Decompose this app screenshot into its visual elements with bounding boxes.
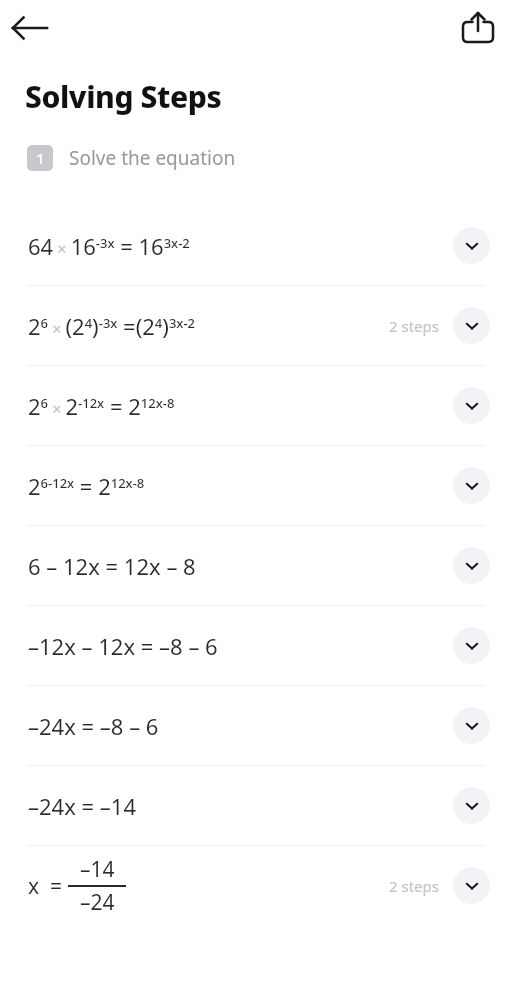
button[interactable]: –12x – 12x = –8 – 6 [0,606,508,685]
button[interactable]: 64 × 16-3x = 163x-2 [0,206,508,285]
staticText: 26-12x = 212x-8 [28,471,145,501]
staticText: –24x = –8 – 6 [28,711,159,741]
button[interactable]: Share [454,4,502,52]
staticText: 2 steps [389,316,439,336]
button[interactable]: Expand step [453,387,490,424]
staticText: 6 – 12x = 12x – 8 [28,551,196,581]
staticText: –12x – 12x = –8 – 6 [28,631,218,661]
staticText: 2 steps [389,876,439,896]
button[interactable]: Expand step [453,227,490,264]
staticText: –14 [80,855,115,884]
button[interactable]: 26 × (24)-3x =(24)3x-2 [0,286,508,365]
button[interactable]: Expand step [453,307,490,344]
staticText: 26 × 2-12x = 212x-8 [28,391,175,421]
staticText: x = [28,872,68,901]
staticText: Solving Steps [25,76,222,117]
button[interactable]: Expand step [453,627,490,664]
staticText: 1 [36,148,45,168]
button[interactable]: Expand step [453,467,490,504]
button[interactable]: Expand step [453,867,490,904]
button[interactable]: x = [0,846,508,925]
button[interactable]: Back [6,4,54,52]
staticText: –24x = –14 [28,791,136,821]
staticText: Solve the equation [69,145,236,171]
button[interactable]: –24x = –14 [0,766,508,845]
button[interactable]: 26 × 2-12x = 212x-8 [0,366,508,445]
staticText: 64 × 16-3x = 163x-2 [28,231,190,261]
button[interactable]: Expand step [453,707,490,744]
button[interactable]: Expand step [453,547,490,584]
button[interactable]: –24x = –8 – 6 [0,686,508,765]
staticText: –24 [80,888,115,917]
staticText: 26 × (24)-3x =(24)3x-2 [28,311,196,341]
button[interactable]: 6 – 12x = 12x – 8 [0,526,508,605]
button[interactable]: 26-12x = 212x-8 [0,446,508,525]
button[interactable]: Expand step [453,787,490,824]
